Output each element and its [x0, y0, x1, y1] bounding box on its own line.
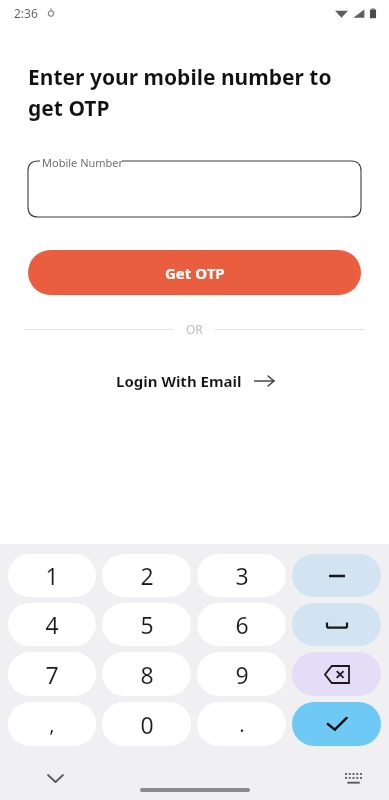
button[interactable]: 2: [102, 554, 191, 597]
staticText: Mobile Number: [42, 155, 124, 170]
button[interactable]: 9: [197, 652, 286, 696]
button[interactable]: Minus: [292, 554, 381, 597]
button[interactable]: Get OTP: [28, 250, 361, 295]
button[interactable]: 8: [102, 652, 191, 696]
button[interactable]: 6: [197, 603, 286, 646]
button[interactable]: ,: [8, 702, 96, 746]
button[interactable]: 1: [8, 554, 96, 597]
staticText: 7: [45, 659, 59, 690]
staticText: Login With Email: [116, 371, 242, 391]
button[interactable]: Login With Email: [106, 365, 284, 397]
button[interactable]: 3: [197, 554, 286, 597]
button[interactable]: Backspace: [292, 652, 381, 696]
staticText: 2: [140, 560, 154, 591]
button[interactable]: Enter: [292, 702, 381, 746]
staticText: 9: [235, 659, 249, 690]
staticText: Enter your mobile number to get OTP: [28, 63, 359, 122]
staticText: 4: [45, 609, 59, 640]
button[interactable]: 7: [8, 652, 96, 696]
button[interactable]: Space: [292, 603, 381, 646]
staticText: 2:36: [14, 5, 38, 21]
staticText: 3: [235, 560, 249, 591]
staticText: .: [239, 711, 245, 738]
button[interactable]: Mobile Number: [28, 155, 361, 217]
button[interactable]: 4: [8, 603, 96, 646]
staticText: OR: [186, 321, 203, 337]
button[interactable]: Hide keyboard: [38, 761, 72, 795]
staticText: Get OTP: [165, 263, 225, 283]
button[interactable]: 0: [102, 702, 191, 746]
staticText: 6: [235, 609, 249, 640]
button[interactable]: 5: [102, 603, 191, 646]
staticText: ,: [49, 711, 55, 738]
staticText: 1: [45, 560, 59, 591]
staticText: 5: [140, 609, 154, 640]
staticText: 0: [140, 709, 154, 740]
button[interactable]: .: [197, 702, 286, 746]
staticText: 8: [140, 659, 154, 690]
button[interactable]: Switch keyboard: [337, 762, 369, 794]
